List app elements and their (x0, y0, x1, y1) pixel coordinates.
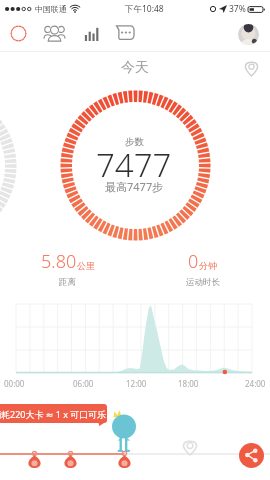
staticText: 步数 (125, 136, 144, 148)
staticText: 公里 (77, 260, 95, 271)
button[interactable]: 消耗220大卡 ≈ 1 x 可口可乐 (0, 404, 107, 423)
staticText: 消耗220大卡 ≈ 1 x 可口可乐 (0, 408, 107, 420)
button[interactable]: Waypoint (183, 440, 197, 455)
staticText: 00:00 (4, 378, 25, 389)
staticText: 分钟 (199, 260, 217, 271)
button[interactable]: Profile (238, 24, 259, 45)
staticText: 0 (188, 249, 199, 274)
staticText: 12:00 (126, 378, 147, 389)
button[interactable]: Friends (42, 21, 66, 45)
button[interactable]: Achievement badge (117, 448, 132, 472)
staticText: 最高7477步 (105, 179, 164, 193)
button[interactable]: Record (6, 21, 30, 45)
button[interactable]: Share (239, 443, 264, 468)
button[interactable]: Messages (113, 21, 137, 45)
staticText: 中国联通 (35, 4, 67, 14)
staticText: 5.80 (41, 249, 77, 274)
staticText: 运动时长 (186, 277, 220, 288)
staticText: 下午10:48 (125, 3, 164, 15)
button[interactable]: 0 (135, 244, 270, 292)
staticText: 24:00 (245, 378, 266, 389)
staticText: 今天 (121, 59, 149, 77)
button[interactable]: Statistics (78, 21, 102, 45)
button[interactable]: Location (242, 59, 260, 77)
staticText: 距离 (59, 277, 76, 288)
staticText: 06:00 (73, 378, 94, 389)
button[interactable]: Achievement badge (27, 448, 42, 472)
staticText: 37% (229, 3, 246, 15)
staticText: 7477 (96, 143, 172, 177)
button[interactable]: 5.80 (0, 244, 135, 292)
staticText: 18:00 (178, 378, 199, 389)
button[interactable]: Achievement badge (63, 448, 78, 472)
